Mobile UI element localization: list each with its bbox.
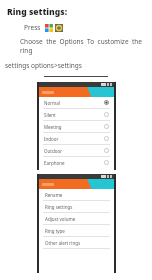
button[interactable]: Ring settings [39,201,114,212]
staticText: Adjust volume [45,216,76,222]
button[interactable]: Adjust volume [39,213,114,224]
staticText: Indoor [44,136,104,142]
button[interactable]: Start menu [45,24,53,32]
staticText: Rename [45,192,63,198]
button[interactable] [39,87,114,97]
staticText: Earphone [44,160,104,166]
staticText: settings options>settings [5,61,82,70]
button[interactable]: Indoor [39,133,114,144]
button[interactable]: Settings [55,24,63,32]
staticText: Ring settings: [7,6,68,18]
staticText: Ring settings [45,204,73,210]
staticText: Choose the Options To customize the ring [20,37,146,55]
staticText: Press [24,23,41,32]
button[interactable] [39,179,114,189]
staticText: Normal [44,100,104,106]
button[interactable]: Earphone [39,157,114,168]
staticText: Meeting [44,124,104,130]
staticText: Outdoor [44,148,104,154]
button[interactable]: Meeting [39,121,114,132]
staticText: Ring type [45,228,65,234]
button[interactable]: Ring type [39,225,114,236]
staticText: Other alert rings [45,240,81,246]
button[interactable]: Other alert rings [39,237,114,248]
button[interactable]: Silent [39,109,114,120]
staticText: Silent [44,112,104,118]
button[interactable]: Outdoor [39,145,114,156]
button[interactable]: Rename [39,189,114,200]
button[interactable]: Normal [39,97,114,108]
